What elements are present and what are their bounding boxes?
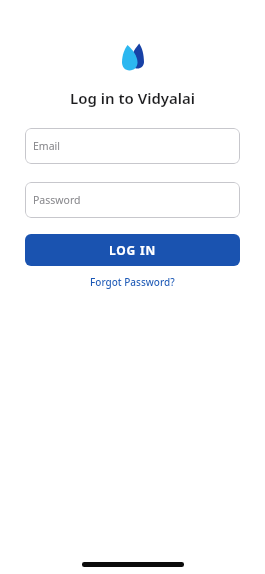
staticText: Log in to Vidyalai <box>70 88 196 108</box>
staticText: LOG IN <box>109 242 156 258</box>
button[interactable]: LOG IN <box>25 234 240 266</box>
staticText: Email <box>33 139 60 153</box>
button[interactable]: Password <box>25 182 240 218</box>
staticText: Forgot Password? <box>90 275 175 289</box>
button[interactable]: Email <box>25 128 240 164</box>
staticText: Password <box>33 193 81 207</box>
button[interactable]: Forgot Password? <box>90 275 175 289</box>
